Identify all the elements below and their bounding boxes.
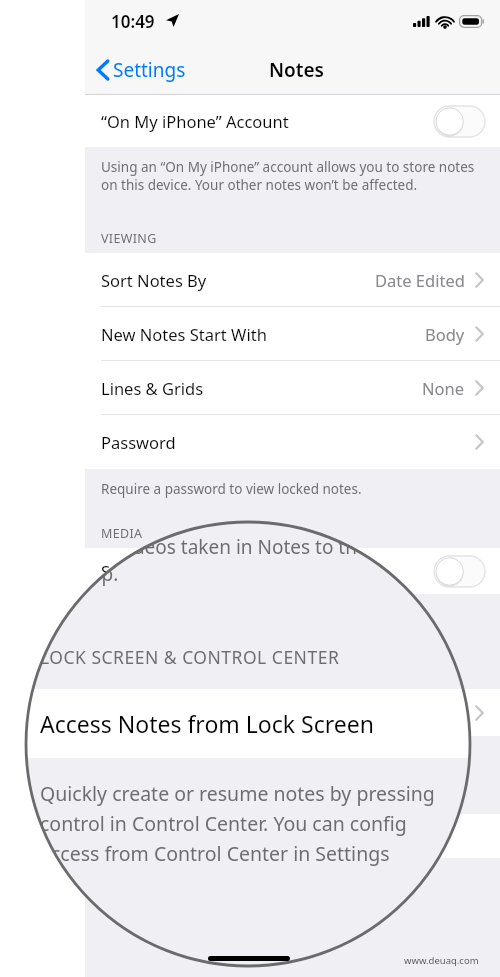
- staticText: photos and videos taken in Notes to the …: [26, 534, 368, 587]
- staticText: Access Notes from Lock Screen: [40, 708, 374, 739]
- staticText: New Notes Start With: [101, 323, 267, 345]
- staticText: Lines & Grids: [101, 377, 204, 399]
- staticText: MEDIA: [101, 525, 143, 542]
- staticText: www.deuaq.com: [404, 954, 479, 967]
- button[interactable]: Access Notes from Lock Screen: [85, 689, 500, 736]
- button[interactable]: Toggle setting: [434, 106, 485, 137]
- staticText: Quickly create or resume notes by pressi…: [40, 780, 435, 866]
- button[interactable]: Access Notes from Lock Screen: [26, 689, 470, 758]
- button[interactable]: Password: [85, 415, 500, 469]
- staticText: “On My iPhone” Account: [101, 110, 289, 132]
- staticText: Using an “On My iPhone” account allows y…: [101, 158, 488, 194]
- button[interactable]: Save to Photos: [85, 548, 500, 594]
- button[interactable]: Toggle setting: [434, 556, 485, 587]
- staticText: None: [422, 377, 465, 399]
- button[interactable]: “On My iPhone” Account: [85, 95, 500, 147]
- button[interactable]: New Notes Start With: [85, 307, 500, 361]
- staticText: Body: [425, 323, 465, 345]
- staticText: Access Notes from Lock Screen: [101, 702, 341, 724]
- button[interactable]: Settings: [91, 50, 192, 90]
- staticText: Save to Photos: [101, 560, 216, 582]
- staticText: 10:49: [111, 10, 155, 33]
- staticText: Date Edited: [375, 269, 465, 291]
- staticText: Settings: [113, 57, 186, 83]
- staticText: Sort Notes By: [101, 269, 207, 291]
- staticText: VIEWING: [101, 230, 157, 247]
- staticText: LOCK SCREEN & CONTROL CENTER: [40, 645, 340, 669]
- staticText: Require a password to view locked notes.: [101, 480, 362, 498]
- button[interactable]: Lines & Grids: [85, 361, 500, 415]
- staticText: Password: [101, 431, 176, 453]
- button[interactable]: Sort Notes By: [85, 253, 500, 307]
- staticText: Notes: [269, 57, 324, 83]
- staticText: Quickly create or resume notes by pressi…: [101, 745, 440, 799]
